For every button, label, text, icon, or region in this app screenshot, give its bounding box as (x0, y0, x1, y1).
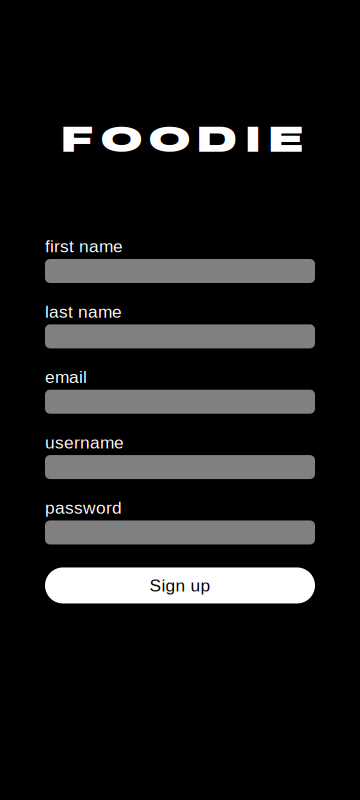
button[interactable]: username (45, 455, 315, 479)
staticText: username (45, 433, 124, 452)
button[interactable]: Sign up (45, 567, 315, 603)
staticText: FOODIE (61, 122, 304, 161)
button[interactable]: password (45, 520, 315, 544)
button[interactable]: first name (45, 259, 315, 283)
button[interactable]: email (45, 390, 315, 414)
staticText: last name (45, 302, 122, 321)
button[interactable]: last name (45, 324, 315, 348)
staticText: first name (45, 237, 123, 256)
staticText: password (45, 498, 122, 517)
staticText: Sign up (149, 576, 210, 595)
staticText: email (45, 367, 87, 387)
